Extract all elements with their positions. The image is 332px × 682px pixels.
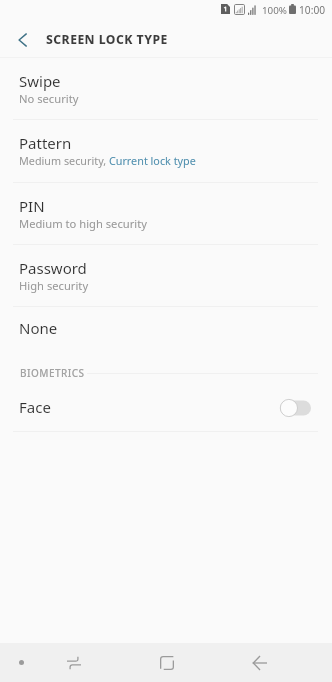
button[interactable]: Home [149,643,184,682]
button[interactable]: Swipe [0,58,332,120]
staticText: Swipe [19,71,61,91]
staticText: Medium security, Current lock type [19,153,196,168]
staticText: None [19,318,58,338]
staticText: High security [19,278,89,293]
staticText: 100% [262,4,287,17]
button[interactable]: Navigate up [8,25,37,54]
button[interactable]: Menu [4,643,39,682]
staticText: Password [19,258,87,278]
button[interactable]: Password [0,245,332,306]
button[interactable]: PIN [0,183,332,244]
staticText: SCREEN LOCK TYPE [46,31,168,48]
staticText: 10:00 [299,3,326,17]
button[interactable]: Recent apps [56,643,91,682]
button[interactable]: None [0,307,332,352]
button[interactable]: Face [0,393,332,431]
staticText: Medium to high security [19,216,147,231]
staticText: PIN [19,196,45,216]
staticText: BIOMETRICS [20,366,85,380]
staticText: Face [19,397,51,417]
button[interactable]: Back [242,643,277,682]
button[interactable]: Pattern [0,120,332,182]
staticText: Pattern [19,133,72,153]
staticText: No security [19,91,79,106]
